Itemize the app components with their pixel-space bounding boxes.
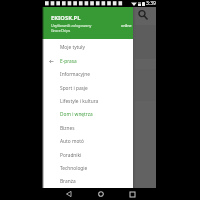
staticText: Uzytkownik zalogowany <box>51 23 92 28</box>
staticText: Lifestyle i kultura <box>60 98 99 105</box>
staticText: Technologie <box>60 165 88 172</box>
staticText: online <box>121 23 132 28</box>
button[interactable]: Informacyjne <box>42 68 133 81</box>
button[interactable]: Moje tytuły <box>42 41 133 54</box>
staticText: Dom i wnętrza <box>60 111 93 118</box>
staticText: GraceChips <box>51 28 71 33</box>
staticText: E-prasa <box>60 58 77 65</box>
staticText: Moje tytuły <box>60 44 86 51</box>
staticText: Sport i pasje <box>60 85 88 92</box>
staticText: Biznes <box>60 125 75 132</box>
staticText: 3:39 <box>146 0 156 7</box>
button[interactable]: Branża <box>42 175 133 188</box>
button[interactable]: Back <box>63 188 75 200</box>
button[interactable]: Biznes <box>42 122 133 135</box>
button[interactable]: Search <box>135 7 151 23</box>
staticText: EKIOSK.PL <box>51 14 81 22</box>
staticText: Auto motó <box>60 138 84 145</box>
button[interactable]: E-prasa <box>42 55 133 68</box>
staticText: Poradniki <box>60 152 82 159</box>
button[interactable]: Recents <box>126 188 138 200</box>
button[interactable]: Poradniki <box>42 149 133 162</box>
button[interactable]: Lifestyle i kultura <box>42 95 133 108</box>
staticText: Branża <box>60 178 76 185</box>
button[interactable]: Sport i pasje <box>42 82 133 95</box>
staticText: Informacyjne <box>60 71 90 78</box>
button[interactable]: Auto motó <box>42 135 133 148</box>
button[interactable]: Technologie <box>42 162 133 175</box>
button[interactable]: Home <box>95 188 107 200</box>
button[interactable]: Dom i wnętrza <box>42 108 133 121</box>
